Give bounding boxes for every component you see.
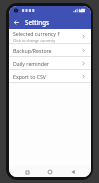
staticText: Settings bbox=[25, 18, 50, 26]
button[interactable]: Back bbox=[68, 167, 78, 177]
button[interactable]: Back bbox=[11, 17, 22, 28]
button[interactable]: Daily reminder bbox=[9, 57, 91, 69]
staticText: Backup/Restore bbox=[13, 47, 52, 54]
staticText: Click to change currency bbox=[13, 38, 56, 43]
staticText: Daily reminder bbox=[13, 60, 49, 67]
staticText: Export to CSV bbox=[13, 73, 46, 80]
button[interactable]: Export to CSV bbox=[9, 70, 91, 82]
button[interactable]: Backup/Restore bbox=[9, 44, 91, 56]
button[interactable]: Recent apps bbox=[22, 167, 32, 177]
button[interactable]: Home bbox=[45, 167, 55, 177]
staticText: Selected currency ₹ bbox=[13, 30, 61, 37]
button[interactable]: Selected currency ₹ bbox=[9, 29, 91, 43]
